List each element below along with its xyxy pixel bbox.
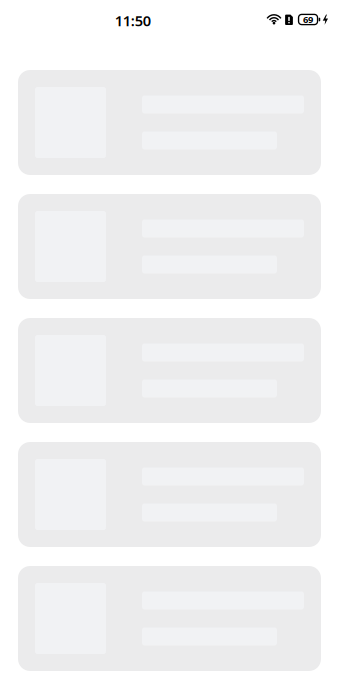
button[interactable]: Loading content [18, 70, 321, 175]
button[interactable]: Loading content [18, 318, 321, 423]
button[interactable]: Loading content [18, 566, 321, 671]
staticText: 69 [303, 13, 313, 26]
button[interactable]: Loading content [18, 194, 321, 299]
button[interactable]: Loading content [18, 442, 321, 547]
staticText: 11:50 [115, 11, 151, 30]
